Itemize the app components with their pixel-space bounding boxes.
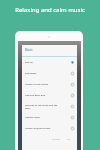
staticText: Lullaby Of Quiet Prairie (25, 127, 51, 130)
button[interactable]: OK (64, 137, 77, 142)
staticText: Rainforest (25, 72, 37, 75)
staticText: Play all (25, 61, 33, 64)
staticText: OK (67, 138, 71, 141)
staticText: Healthy Wind (25, 116, 40, 119)
staticText: stars (25, 107, 31, 110)
button[interactable]: CANCEL (49, 137, 64, 142)
button[interactable]: Rainforest (22, 68, 77, 79)
staticText: CANCEL (52, 138, 61, 141)
button[interactable]: Whisper Of The Moon and the (22, 101, 77, 112)
staticText: Whisper Of The Moon and the (25, 104, 58, 107)
button[interactable]: Healthy Wind (22, 112, 77, 123)
button[interactable]: Lullaby Of Quiet Prairie (22, 123, 77, 134)
button[interactable]: Lullaby In The Woods (22, 79, 77, 90)
button[interactable]: Play all (22, 57, 77, 68)
staticText: Music (25, 48, 33, 52)
staticText: Lullaby In The Woods (25, 83, 49, 86)
staticText: Relaxing and calm music (15, 6, 85, 14)
button[interactable]: Like The Early Bird (22, 90, 77, 101)
staticText: Like The Early Bird (25, 94, 46, 97)
